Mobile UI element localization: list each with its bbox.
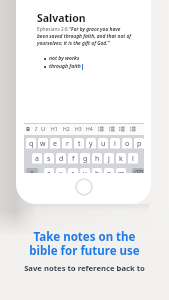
- button[interactable]: l: [128, 153, 138, 165]
- button[interactable]: t: [74, 138, 84, 150]
- button[interactable]: a: [32, 153, 42, 165]
- button[interactable]: B: [26, 125, 30, 133]
- button[interactable]: s: [44, 153, 54, 165]
- button[interactable]: y: [86, 138, 96, 150]
- staticText: b: [95, 169, 100, 173]
- staticText: through faith: [49, 63, 81, 70]
- button[interactable]: [130, 126, 136, 132]
- staticText: k: [119, 154, 123, 164]
- button[interactable]: o: [122, 138, 132, 150]
- staticText: n: [107, 169, 112, 173]
- staticText: e: [53, 139, 57, 149]
- button[interactable]: e: [50, 138, 60, 150]
- staticText: h: [95, 154, 100, 164]
- staticText: v: [83, 169, 87, 173]
- button[interactable]: i: [110, 138, 120, 150]
- button[interactable]: U: [41, 125, 46, 133]
- button[interactable]: H3: [75, 126, 82, 133]
- button[interactable]: j: [104, 153, 114, 165]
- button[interactable]: u: [98, 138, 108, 150]
- button[interactable]: [75, 178, 93, 196]
- button[interactable]: Take notes on the bible for future use: [29, 229, 140, 258]
- staticText: i: [114, 139, 116, 149]
- button[interactable]: f: [68, 153, 78, 165]
- staticText: ⇧: [29, 170, 35, 173]
- button[interactable]: n: [104, 168, 114, 173]
- staticText: Save notes to reference back to: [24, 263, 145, 273]
- staticText: u: [101, 139, 106, 149]
- button[interactable]: p: [134, 138, 144, 150]
- staticText: f: [72, 154, 75, 164]
- button[interactable]: z: [44, 168, 54, 173]
- button[interactable]: k: [116, 153, 126, 165]
- staticText: x: [59, 169, 63, 173]
- staticText: not by works: [49, 55, 80, 62]
- button[interactable]: H1: [51, 126, 58, 133]
- button[interactable]: m: [116, 168, 126, 173]
- button[interactable]: [109, 126, 115, 132]
- button[interactable]: c: [68, 168, 78, 173]
- button[interactable]: H4: [86, 126, 93, 133]
- button[interactable]: v: [80, 168, 90, 173]
- staticText: ⌫: [133, 170, 143, 173]
- staticText: Salvation: [37, 11, 86, 25]
- staticText: w: [40, 139, 46, 149]
- staticText: l: [132, 154, 134, 164]
- button[interactable]: r: [62, 138, 72, 150]
- staticText: s: [47, 154, 51, 164]
- staticText: c: [71, 169, 75, 173]
- button[interactable]: q: [26, 138, 36, 150]
- button[interactable]: [119, 126, 125, 132]
- staticText: y: [89, 139, 93, 149]
- button[interactable]: x: [56, 168, 66, 173]
- staticText: p: [137, 139, 142, 149]
- staticText: j: [108, 154, 110, 164]
- button[interactable]: ⇧: [26, 168, 38, 173]
- staticText: g: [83, 154, 88, 164]
- button[interactable]: h: [92, 153, 102, 165]
- button[interactable]: H2: [63, 126, 70, 133]
- button[interactable]: w: [38, 138, 48, 150]
- button[interactable]: [98, 126, 104, 132]
- staticText: z: [47, 169, 51, 173]
- staticText: q: [29, 139, 34, 149]
- staticText: r: [66, 139, 69, 149]
- staticText: d: [59, 154, 64, 164]
- button[interactable]: b: [92, 168, 102, 173]
- button[interactable]: g: [80, 153, 90, 165]
- staticText: o: [125, 139, 130, 149]
- staticText: m: [118, 169, 125, 173]
- staticText: a: [35, 154, 39, 164]
- button[interactable]: I: [35, 125, 37, 133]
- staticText: t: [78, 139, 81, 149]
- button[interactable]: ⌫: [132, 168, 144, 173]
- button[interactable]: d: [56, 153, 66, 165]
- staticText: Ephesians 2:8 “For by grace you have bee…: [37, 26, 132, 47]
